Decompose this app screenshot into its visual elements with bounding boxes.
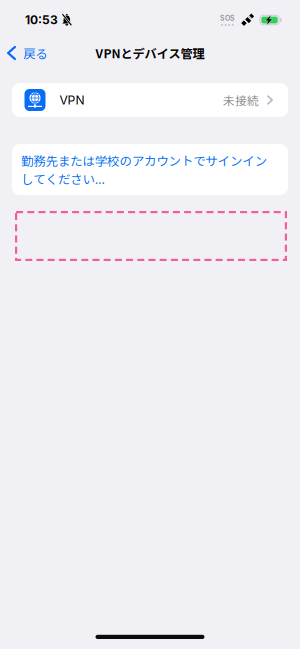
staticText: 10:53 (25, 13, 58, 27)
staticText: 勤務先または学校のアカウントでサインイン (21, 151, 267, 169)
staticText: 未接続 (223, 91, 259, 109)
staticText: SOS (220, 14, 235, 22)
staticText: してください... (21, 170, 104, 188)
button[interactable]: VPN (12, 83, 288, 117)
button[interactable]: 勤務先または学校のアカウントでサインイン (12, 144, 288, 195)
staticText: VPNとデバイス管理 (95, 44, 204, 62)
staticText: 戻る (23, 44, 47, 62)
button[interactable]: 戻る (0, 40, 55, 66)
staticText: VPN (59, 93, 84, 107)
